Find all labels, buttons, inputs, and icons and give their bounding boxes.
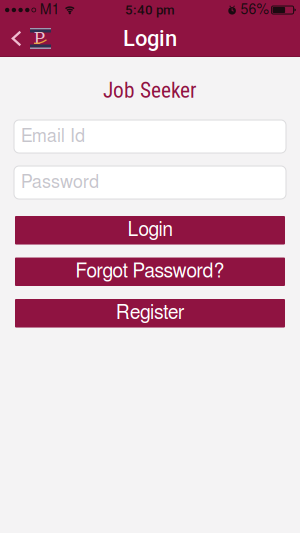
button[interactable]: Back (0, 28, 51, 49)
staticText: Job Seeker (103, 78, 197, 103)
secureTextField[interactable]: Password (21, 173, 286, 191)
staticText: Email Id (21, 127, 85, 145)
textField[interactable]: Email Id (21, 127, 286, 145)
staticText: Register (116, 304, 184, 323)
staticText: Forgot Password? (75, 262, 224, 281)
staticText: P (33, 28, 45, 48)
staticText: Email Id (21, 127, 85, 145)
staticText: Password (21, 173, 99, 191)
button[interactable]: Forgot Password? (15, 257, 285, 286)
staticText: Password (21, 173, 99, 191)
staticText: M1 (40, 3, 60, 17)
button[interactable]: Register (15, 299, 285, 327)
staticText: 5:40 pm (125, 2, 175, 18)
button[interactable]: Login (15, 216, 285, 244)
staticText: 56% (241, 3, 269, 17)
staticText: Login (127, 221, 172, 240)
staticText: Login (123, 26, 177, 51)
